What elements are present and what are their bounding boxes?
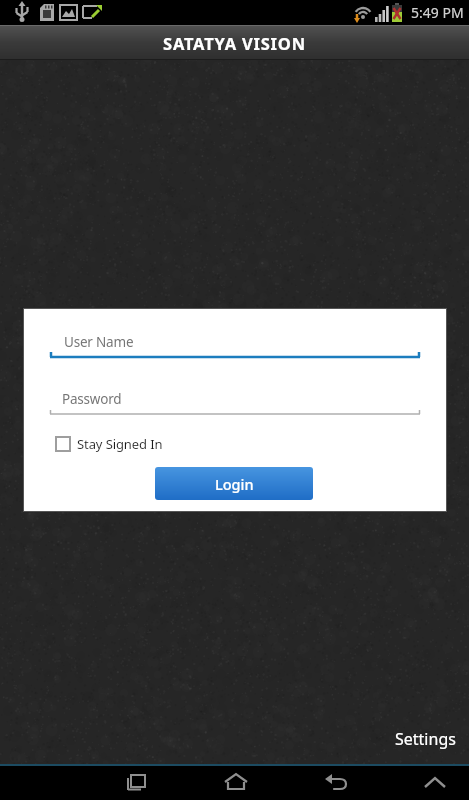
button[interactable]	[320, 771, 350, 795]
staticText: Password	[62, 390, 122, 408]
button[interactable]	[50, 319, 420, 359]
button[interactable]: Settings	[395, 728, 456, 750]
staticText: User Name	[64, 333, 134, 351]
button[interactable]	[50, 377, 420, 416]
button[interactable]	[122, 771, 152, 795]
staticText: SATATYA VISION	[163, 32, 306, 54]
button[interactable]: Stay Signed In	[55, 435, 163, 453]
button[interactable]	[420, 771, 450, 795]
staticText: Stay Signed In	[77, 435, 163, 453]
button[interactable]: Login	[155, 467, 313, 500]
staticText: Login	[215, 474, 254, 494]
button[interactable]	[221, 771, 251, 795]
staticText: 5:49 PM	[411, 3, 464, 22]
